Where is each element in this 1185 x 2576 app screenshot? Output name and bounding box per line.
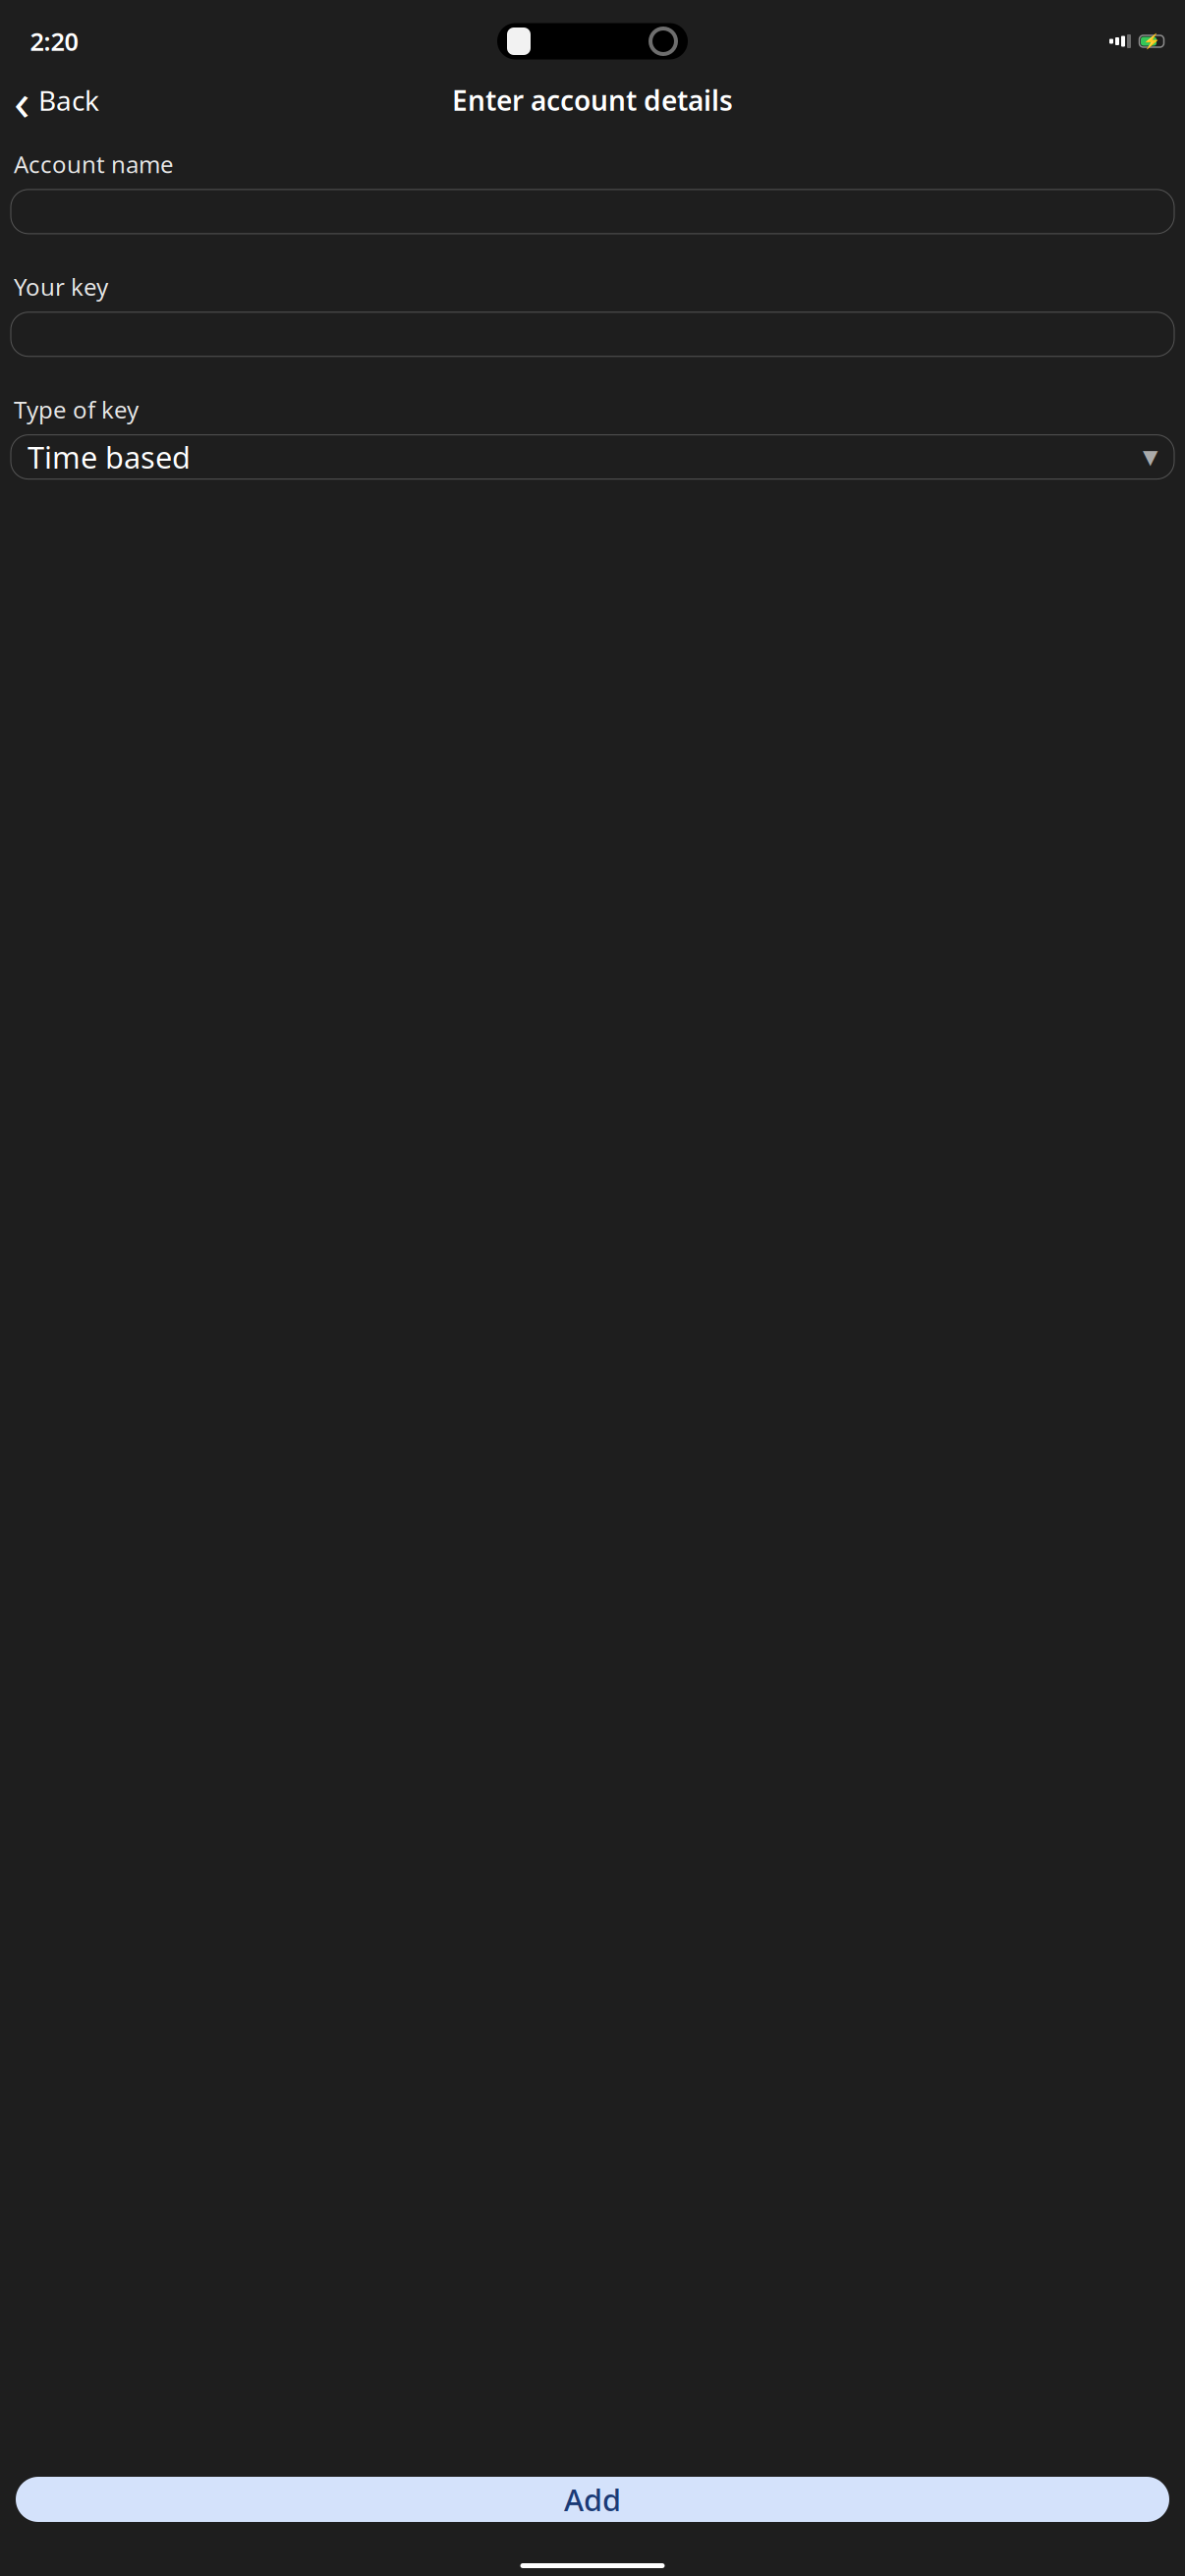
staticText: Back [38,82,99,118]
staticText: Account name [14,148,174,180]
staticText: ▼ [1143,446,1157,468]
button[interactable]: ‹ [0,60,99,141]
staticText: Enter account details [452,82,733,118]
staticText: 2:20 [30,25,78,58]
staticText: ‹ [14,65,30,135]
button[interactable]: Add [16,2477,1169,2522]
button[interactable]: Time based [11,435,1174,479]
staticText: Time based [28,437,191,477]
staticText: ⚡ [1143,33,1160,50]
staticText: Your key [14,271,108,302]
staticText: Type of key [14,394,139,425]
staticText: Add [564,2479,621,2519]
